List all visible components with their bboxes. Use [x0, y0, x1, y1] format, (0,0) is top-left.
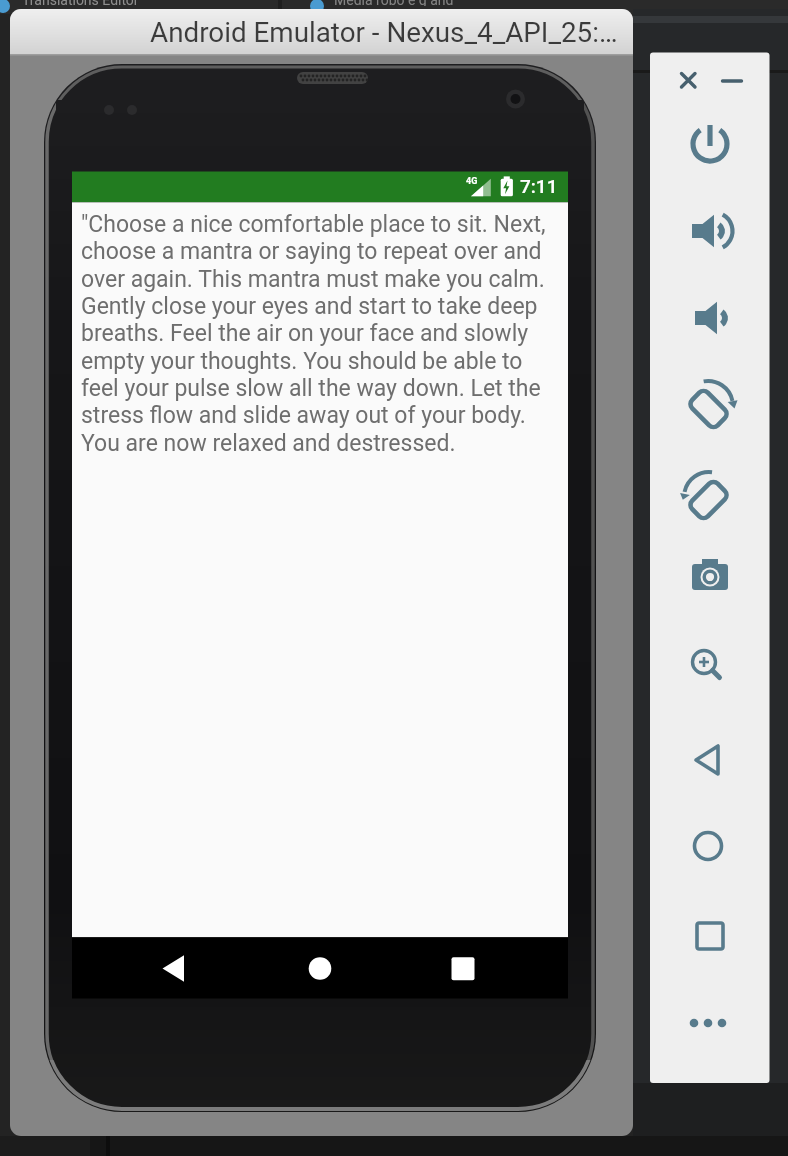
staticText: choose a mantra or saying to repeat over…	[81, 238, 542, 265]
staticText: 7:11	[520, 175, 558, 197]
staticText: stress flow and slide away out of your b…	[81, 402, 526, 429]
staticText: empty your thoughts. You should be able …	[81, 348, 523, 375]
staticText: feel your pulse slow all the way down. L…	[81, 375, 541, 402]
staticText: Translations Editor	[22, 0, 139, 6]
staticText: Gently close your eyes and start to take…	[81, 293, 538, 320]
staticText: 4G	[466, 176, 478, 187]
staticText: Media robo e g and	[334, 0, 454, 6]
staticText: breaths. Feel the air on your face and s…	[81, 320, 529, 347]
staticText: You are now relaxed and destressed.	[81, 430, 456, 457]
staticText: Android Emulator - Nexus_4_API_25:…	[150, 16, 618, 49]
staticText: "Choose a nice comfortable place to sit.…	[81, 211, 546, 238]
staticText: over again. This mantra must make you ca…	[81, 266, 545, 293]
